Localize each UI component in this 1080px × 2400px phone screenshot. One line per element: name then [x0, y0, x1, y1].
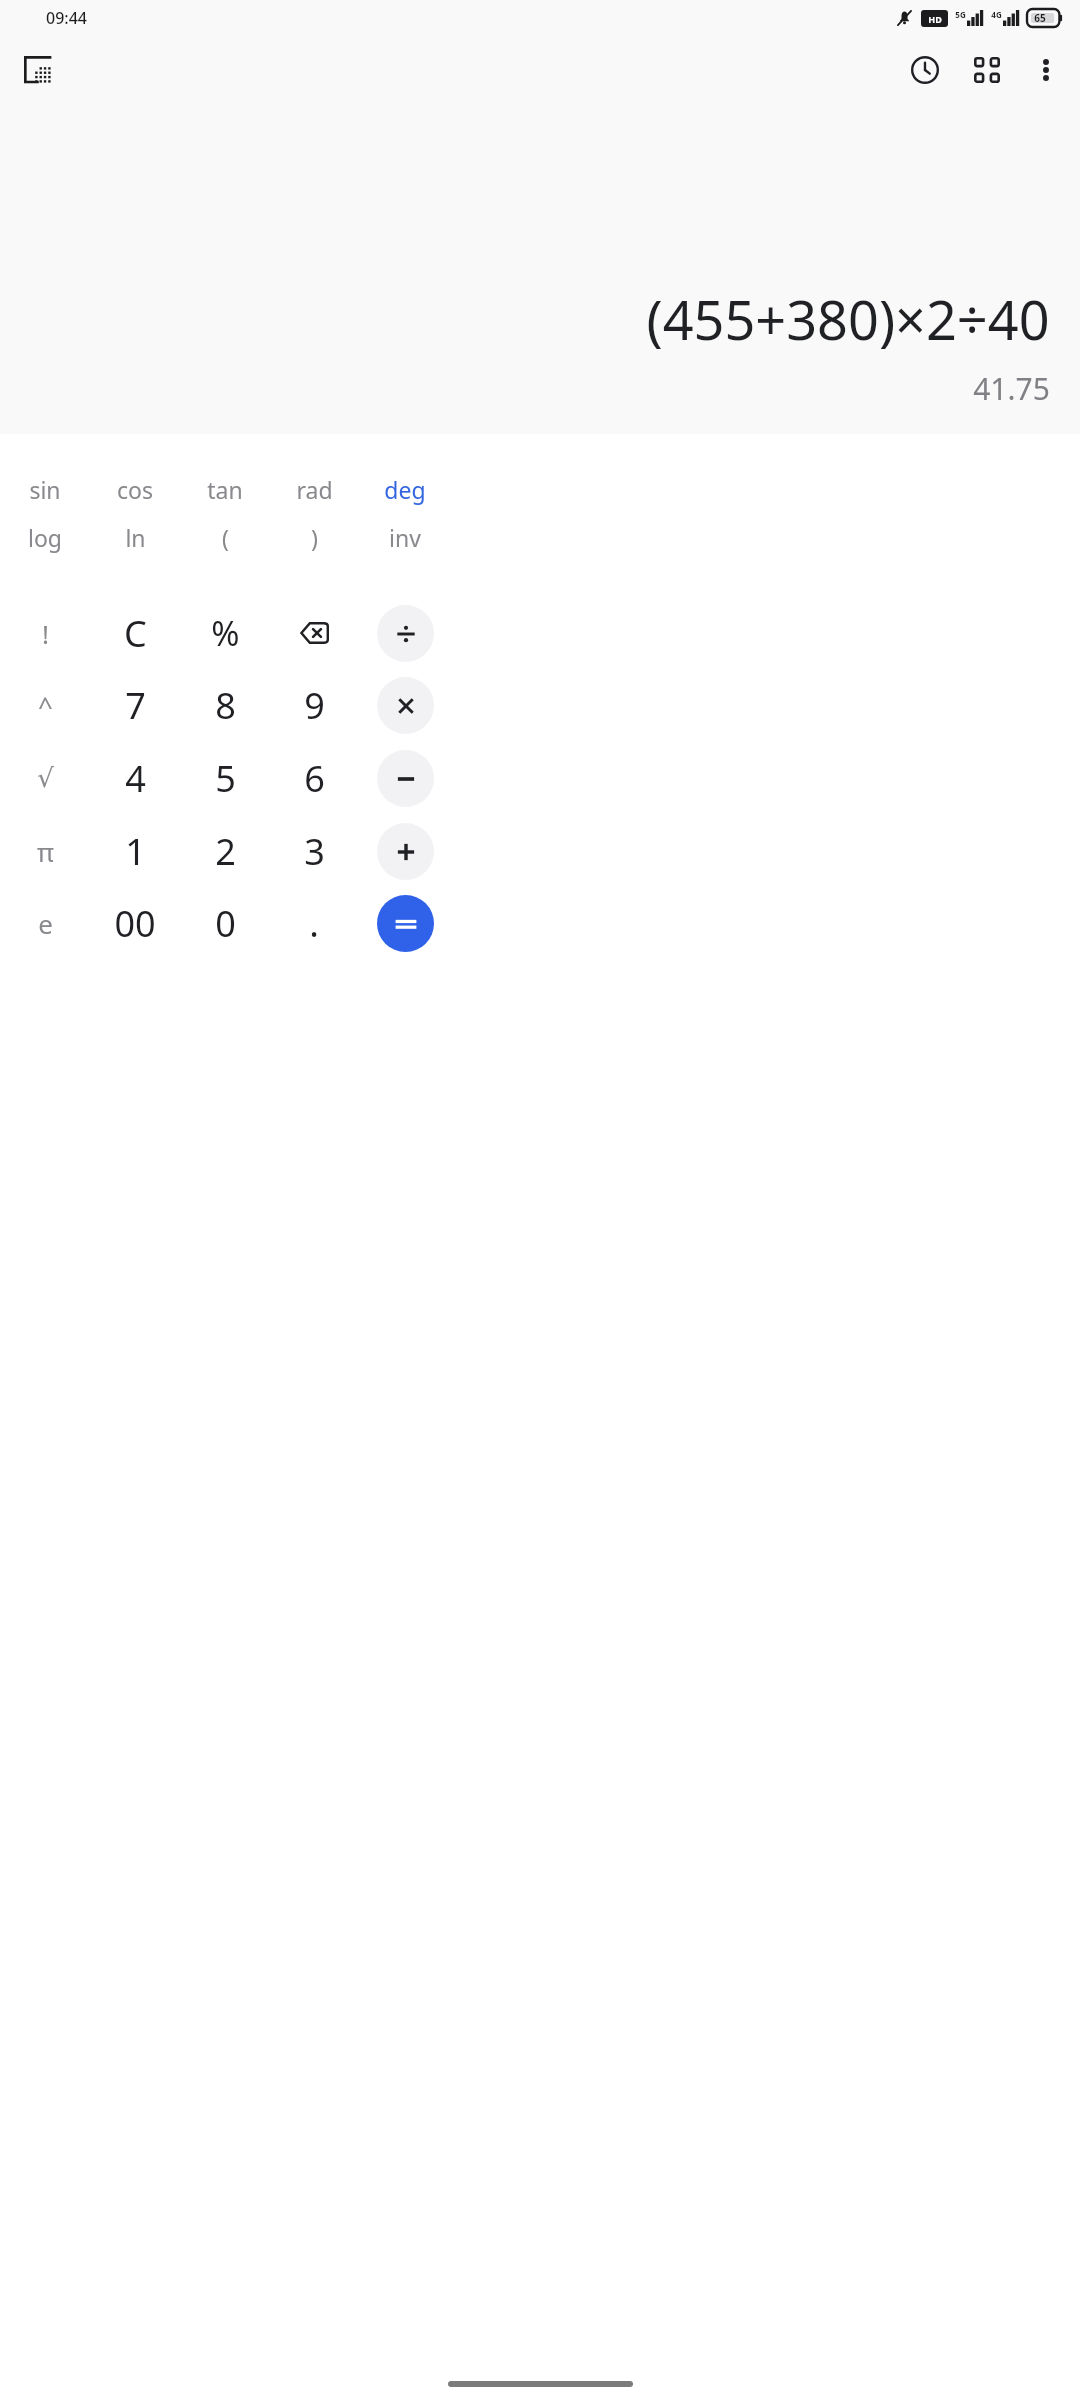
button[interactable]: ( [180, 503, 270, 571]
staticText: 09:44 [46, 7, 87, 29]
button[interactable]: Subtract [377, 750, 434, 807]
button[interactable]: cos [90, 455, 180, 523]
button[interactable]: Floating window [8, 40, 68, 100]
staticText: 1 [125, 827, 146, 876]
staticText: cos [117, 474, 153, 505]
staticText: HD [928, 13, 942, 25]
staticText: ^ [38, 688, 53, 723]
staticText: 5 [215, 754, 236, 803]
staticText: π [37, 834, 54, 869]
button[interactable]: Backspace [271, 590, 357, 676]
staticText: 4 [125, 754, 146, 803]
button[interactable]: Add [377, 823, 434, 880]
staticText: (455+380)×2÷40 [646, 282, 1050, 356]
staticText: √ [37, 763, 54, 793]
staticText: e [38, 906, 53, 941]
button[interactable]: History [894, 39, 956, 101]
button[interactable]: tan [180, 455, 270, 523]
button[interactable]: e [2, 880, 88, 966]
staticText: deg [384, 474, 426, 505]
button[interactable]: deg [360, 455, 450, 523]
button[interactable]: inv [360, 503, 450, 571]
button[interactable]: ln [90, 503, 180, 571]
button[interactable]: ! [2, 590, 88, 676]
button[interactable]: Unit converter [956, 39, 1018, 101]
staticText: . [309, 899, 319, 948]
button[interactable]: 6 [271, 735, 357, 821]
staticText: 7 [125, 681, 146, 730]
button[interactable]: More options [1018, 39, 1074, 101]
staticText: ! [42, 616, 49, 651]
staticText: ln [125, 522, 146, 553]
staticText: 65 [1034, 11, 1046, 25]
staticText: 0 [215, 899, 236, 948]
staticText: 4G [991, 9, 1002, 20]
staticText: 5G [955, 9, 966, 20]
button[interactable]: log [0, 503, 90, 571]
staticText: ( [222, 522, 229, 553]
button[interactable]: . [271, 880, 357, 966]
button[interactable]: Equals [377, 895, 434, 952]
button[interactable]: 9 [271, 662, 357, 748]
button[interactable]: 00 [92, 880, 178, 966]
staticText: rad [296, 474, 333, 505]
button[interactable]: Multiply [377, 677, 434, 734]
button[interactable]: 1 [92, 808, 178, 894]
button[interactable]: sin [0, 455, 90, 523]
button[interactable]: rad [269, 455, 359, 523]
staticText: tan [207, 474, 243, 505]
button[interactable]: 8 [182, 662, 268, 748]
staticText: 6 [304, 754, 325, 803]
button[interactable]: % [182, 590, 268, 676]
button[interactable]: π [2, 808, 88, 894]
button[interactable]: 3 [271, 808, 357, 894]
staticText: ) [311, 522, 318, 553]
button[interactable]: 7 [92, 662, 178, 748]
button[interactable]: √ [2, 735, 88, 821]
staticText: 8 [215, 681, 236, 730]
staticText: inv [389, 522, 421, 553]
button[interactable]: 4 [92, 735, 178, 821]
button[interactable]: C [92, 590, 178, 676]
staticText: sin [29, 474, 61, 505]
button[interactable]: 0 [182, 880, 268, 966]
staticText: % [211, 610, 240, 656]
staticText: 9 [304, 681, 325, 730]
button[interactable]: Divide [377, 605, 434, 662]
button[interactable]: 2 [182, 808, 268, 894]
button[interactable]: ^ [2, 662, 88, 748]
staticText: C [124, 609, 147, 658]
button[interactable]: ) [269, 503, 359, 571]
staticText: log [28, 522, 62, 553]
staticText: 00 [114, 899, 156, 948]
staticText: 2 [215, 827, 236, 876]
staticText: 41.75 [973, 368, 1050, 409]
staticText: 3 [304, 827, 325, 876]
button[interactable]: 5 [182, 735, 268, 821]
